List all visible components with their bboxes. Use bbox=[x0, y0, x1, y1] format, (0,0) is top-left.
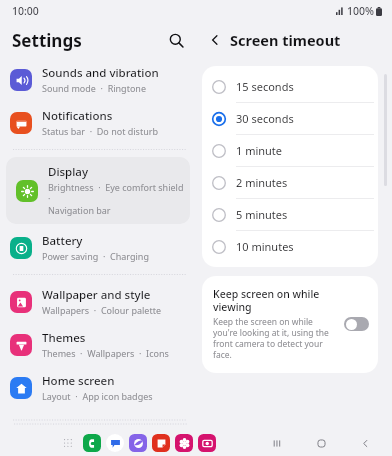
button[interactable]: notes bbox=[152, 434, 170, 452]
button[interactable]: Home bbox=[310, 432, 332, 454]
button[interactable]: Sounds and vibration bbox=[0, 58, 196, 101]
staticText: 2 minutes bbox=[236, 175, 288, 190]
staticText: 10:00 bbox=[12, 4, 39, 18]
staticText: Sound mode · Ringtone bbox=[42, 82, 146, 94]
staticText: Status bar · Do not disturb bbox=[42, 125, 158, 137]
button[interactable]: Display bbox=[6, 157, 190, 224]
staticText: Settings bbox=[12, 29, 82, 52]
button[interactable]: Apps bbox=[58, 433, 78, 453]
staticText: 100% bbox=[347, 4, 374, 18]
button[interactable]: camera bbox=[198, 434, 216, 452]
staticText: Layout · App icon badges bbox=[42, 390, 153, 402]
button[interactable]: 10 minutes bbox=[202, 231, 378, 262]
button[interactable]: Home screen bbox=[0, 366, 196, 409]
button[interactable]: Themes bbox=[0, 323, 196, 366]
staticText: 30 seconds bbox=[236, 111, 294, 126]
button[interactable]: internet bbox=[129, 434, 147, 452]
staticText: Power saving · Charging bbox=[42, 250, 149, 262]
button[interactable]: Battery bbox=[0, 226, 196, 269]
staticText: Battery bbox=[42, 233, 83, 249]
button[interactable]: 5 minutes bbox=[202, 199, 378, 230]
staticText: Themes bbox=[42, 330, 86, 346]
button[interactable]: Back bbox=[202, 27, 228, 53]
staticText: Display bbox=[48, 164, 88, 180]
button[interactable]: Keep screen on while viewing bbox=[202, 276, 378, 373]
button[interactable]: Keep screen on while viewing toggle bbox=[344, 317, 369, 331]
staticText: Themes · Wallpapers · Icons bbox=[42, 347, 169, 359]
staticText: Keep the screen on while you're looking … bbox=[213, 316, 338, 360]
button[interactable]: Notifications bbox=[0, 101, 196, 144]
staticText: Keep screen on while viewing bbox=[213, 287, 338, 314]
staticText: Wallpaper and style bbox=[42, 287, 151, 303]
button[interactable]: phone bbox=[83, 434, 101, 452]
button[interactable]: 30 seconds bbox=[202, 103, 378, 134]
button[interactable]: messages bbox=[106, 434, 124, 452]
staticText: 10 minutes bbox=[236, 239, 294, 254]
staticText: 15 seconds bbox=[236, 79, 294, 94]
button[interactable]: Wallpaper and style bbox=[0, 280, 196, 323]
staticText: Wallpapers · Colour palette bbox=[42, 304, 161, 316]
staticText: Sounds and vibration bbox=[42, 65, 159, 81]
button[interactable]: 1 minute bbox=[202, 135, 378, 166]
staticText: 1 minute bbox=[236, 143, 283, 158]
staticText: Home screen bbox=[42, 373, 115, 389]
staticText: Brightness · Eye comfort shield · Naviga… bbox=[48, 181, 184, 217]
staticText: Notifications bbox=[42, 108, 113, 124]
button[interactable]: Back bbox=[354, 432, 376, 454]
button[interactable]: gallery bbox=[175, 434, 193, 452]
button[interactable]: 2 minutes bbox=[202, 167, 378, 198]
staticText: 5 minutes bbox=[236, 207, 288, 222]
button[interactable]: Search bbox=[162, 26, 190, 54]
button[interactable]: 15 seconds bbox=[202, 71, 378, 102]
staticText: Screen timeout bbox=[230, 30, 341, 50]
button[interactable]: Recents bbox=[266, 432, 288, 454]
